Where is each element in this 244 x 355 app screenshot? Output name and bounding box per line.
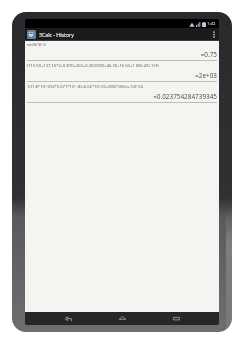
button[interactable]: More options [209,28,219,40]
staticText: =0.023754284739345 [27,92,217,101]
staticText: 1:42 [207,21,216,27]
staticText: (115.50+137.16*2+0.870+263+0.350/300+46.… [27,63,217,69]
button[interactable]: sin(6/3)^2 [25,41,219,62]
staticText: 3Calc - History [39,31,74,38]
staticText: =0.75 [27,50,217,59]
staticText: sin(6/3)^2 [27,42,217,48]
button[interactable]: Recent apps [163,312,189,325]
button[interactable]: App icon, navigate up [27,30,36,39]
button[interactable]: 1/(1.8*10^3/(2*5.671*10^-8)+6.02*10^23+9… [25,83,219,104]
button[interactable]: (115.50+137.16*2+0.870+263+0.350/300+46.… [25,62,219,83]
staticText: =2e+03 [27,71,217,80]
staticText: 1/(1.8*10^3/(2*5.671*10^-8)+6.02*10^23+9… [27,84,217,90]
button[interactable]: Back [55,312,81,325]
button[interactable]: Home [109,312,135,325]
